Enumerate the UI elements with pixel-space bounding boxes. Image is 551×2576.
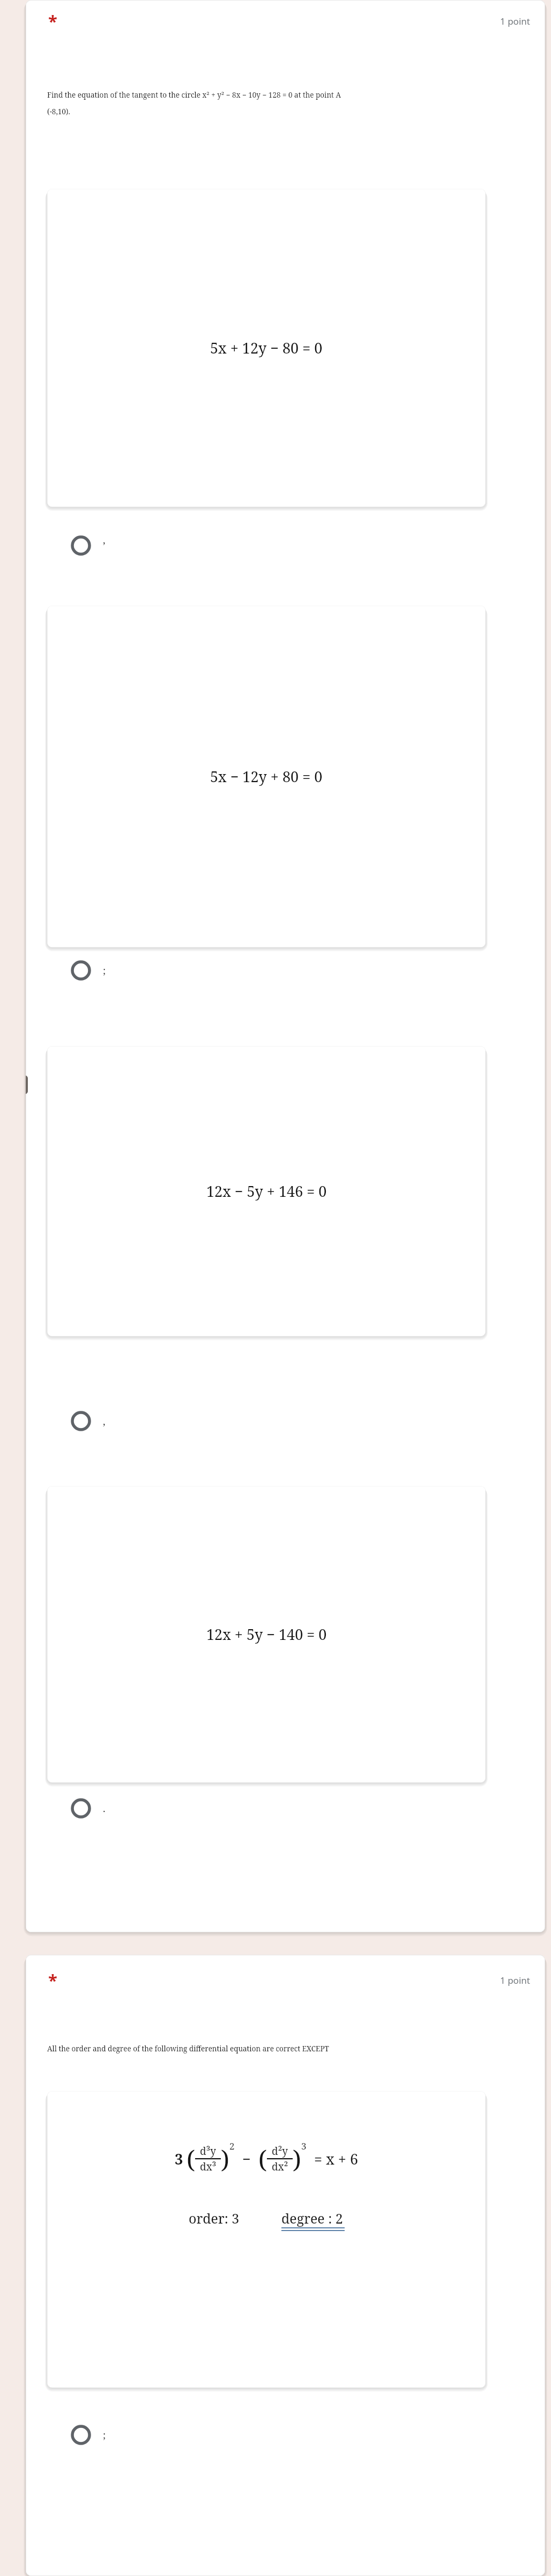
staticText: 5x − 12y + 80 = 0 xyxy=(210,767,323,786)
button[interactable]: Select option xyxy=(26,1401,545,1441)
button[interactable]: Select option xyxy=(26,526,545,565)
staticText: 12x − 5y + 146 = 0 xyxy=(206,1181,327,1201)
other: Select option xyxy=(71,1798,91,1819)
staticText: , xyxy=(103,1415,106,1428)
button[interactable]: Select option xyxy=(26,1789,545,1828)
staticText: ( xyxy=(258,2142,267,2176)
button[interactable]: 12x + 5y − 140 = 0 xyxy=(47,1486,486,1783)
staticText: dx² xyxy=(272,2160,288,2174)
button[interactable]: 3 xyxy=(47,2091,486,2388)
staticText: All the order and degree of the followin… xyxy=(47,2044,329,2054)
staticText: degree : 2 xyxy=(281,2209,343,2227)
other: Select option xyxy=(71,535,91,556)
staticText: 5x + 12y − 80 = 0 xyxy=(210,338,323,358)
button[interactable]: Select option xyxy=(26,2415,545,2455)
button[interactable]: 5x − 12y + 80 = 0 xyxy=(47,606,486,947)
other: Select option xyxy=(71,960,91,981)
staticText: ) xyxy=(293,2142,301,2176)
staticText: 2 xyxy=(229,2140,235,2152)
button[interactable]: 12x − 5y + 146 = 0 xyxy=(47,1046,486,1336)
staticText: dx³ xyxy=(200,2160,217,2174)
staticText: (-8,10). xyxy=(47,107,70,116)
staticText: * xyxy=(48,10,57,32)
button[interactable]: 5x + 12y − 80 = 0 xyxy=(47,189,486,507)
staticText: ’ xyxy=(103,539,106,553)
staticText: Find the equation of the tangent to the … xyxy=(47,90,341,100)
staticText: ) xyxy=(221,2142,229,2176)
staticText: 3 xyxy=(301,2140,307,2152)
staticText: 12x + 5y − 140 = 0 xyxy=(206,1624,327,1644)
staticText: d³y xyxy=(200,2144,217,2158)
staticText: ; xyxy=(103,964,106,977)
staticText: 1 point xyxy=(500,1974,530,1986)
button[interactable]: Feedback xyxy=(26,1076,28,1099)
staticText: d²y xyxy=(272,2144,288,2158)
other: Select option xyxy=(71,2425,91,2445)
staticText: 1 point xyxy=(500,15,530,27)
staticText: 3 xyxy=(175,2149,183,2169)
staticText: ; xyxy=(103,2428,106,2442)
staticText: − xyxy=(235,2149,258,2169)
staticText: ( xyxy=(187,2142,195,2176)
staticText: order: 3 xyxy=(189,2209,240,2227)
staticText: . xyxy=(103,1802,106,1815)
other: Select option xyxy=(71,1411,91,1431)
staticText: = x + 6 xyxy=(307,2149,358,2169)
button[interactable]: Select option xyxy=(26,951,545,990)
staticText: * xyxy=(48,1969,57,1991)
